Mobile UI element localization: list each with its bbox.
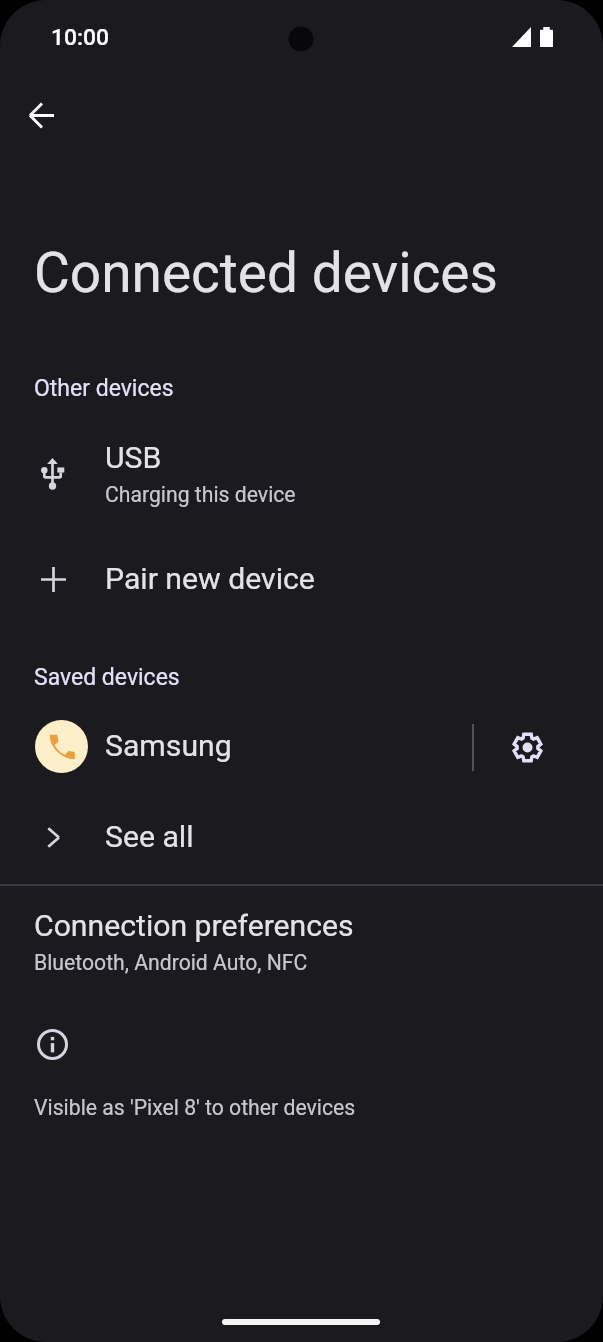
staticText: USB [105,440,162,475]
button[interactable]: USB [0,428,603,516]
staticText: Other devices [34,375,174,402]
staticText: Pair new device [105,561,315,596]
staticText: See all [105,819,194,854]
button[interactable]: See all [0,810,603,882]
staticText: Connection preferences [34,908,354,943]
staticText: 10:00 [51,24,109,51]
button[interactable]: Connection preferences [0,900,603,990]
staticText: Saved devices [34,664,180,691]
button[interactable]: Back [17,91,65,139]
button[interactable]: Samsung [0,712,603,782]
button[interactable]: Pair new device [0,552,603,624]
staticText: Connected devices [34,241,498,305]
button[interactable]: Device settings [489,712,565,782]
staticText: Samsung [105,728,232,763]
staticText: Visible as 'Pixel 8' to other devices [34,1095,356,1120]
staticText: Charging this device [105,482,296,507]
staticText: Bluetooth, Android Auto, NFC [34,950,308,975]
